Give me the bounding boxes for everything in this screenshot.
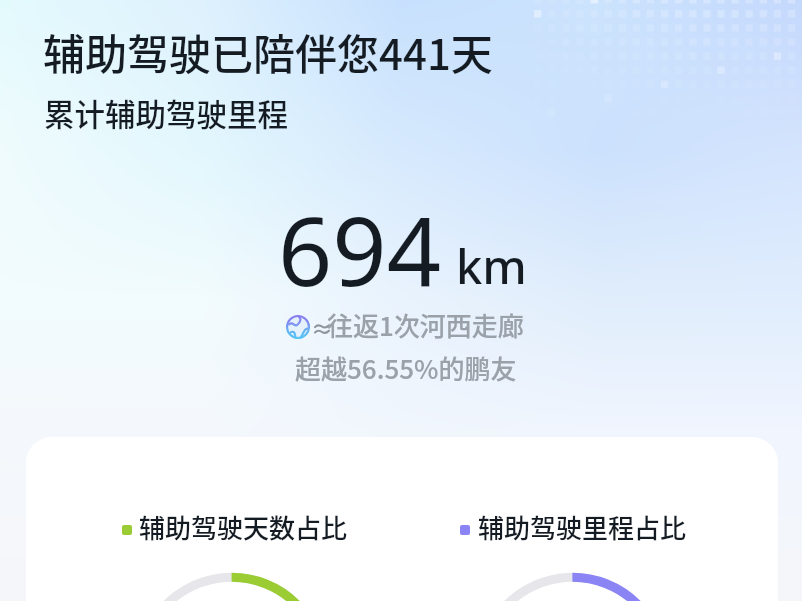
staticText: 辅助驾驶已陪伴您441天 xyxy=(43,21,493,82)
staticText: 辅助驾驶天数占比 xyxy=(139,508,348,546)
staticText: 超越56.55%的鹏友 xyxy=(295,349,517,387)
staticText: 694 xyxy=(278,184,442,313)
button[interactable]: 辅助驾驶天数占比 xyxy=(113,505,353,545)
staticText: 累计辅助驾驶里程 xyxy=(44,91,288,135)
button[interactable]: 辅助驾驶里程占比 xyxy=(451,505,691,545)
staticText: 往返1次河西走廊 xyxy=(327,306,524,344)
staticText: km xyxy=(456,234,527,298)
button[interactable] xyxy=(26,437,778,601)
staticText: 辅助驾驶里程占比 xyxy=(478,508,687,546)
